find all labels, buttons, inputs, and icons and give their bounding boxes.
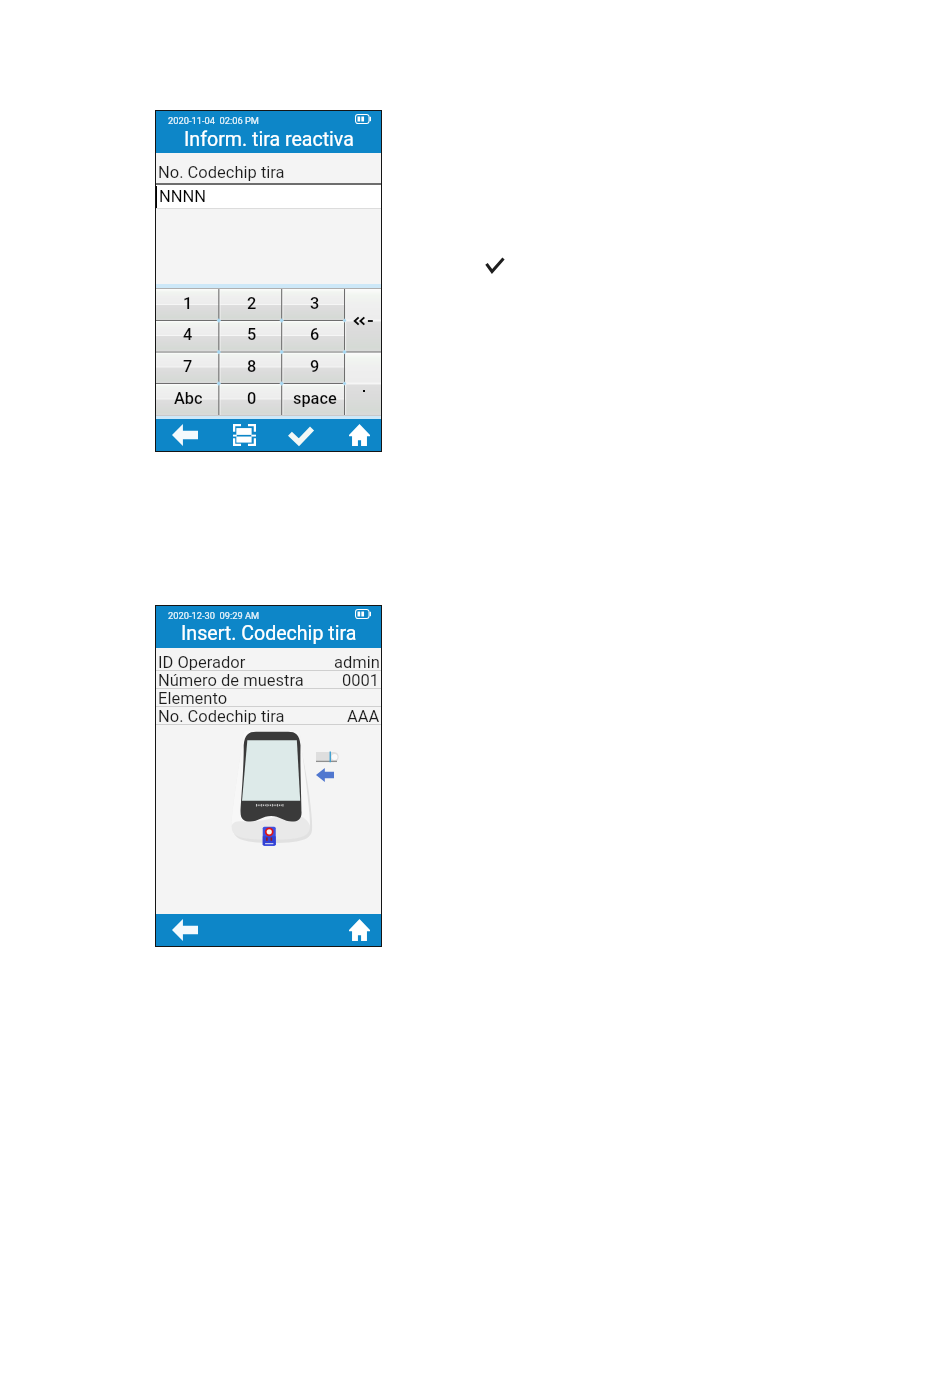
button[interactable]: 2 — [220, 289, 283, 320]
staticText: 2020-12-30 09:29 AM — [168, 610, 260, 621]
staticText: 7 — [183, 357, 193, 376]
button[interactable]: 8 — [220, 351, 283, 383]
staticText: NNNN — [159, 187, 207, 206]
staticText: Abc — [174, 389, 203, 408]
button[interactable]: 9 — [283, 351, 346, 383]
button[interactable] — [346, 289, 381, 352]
staticText: Elemento — [158, 689, 228, 707]
staticText: No. Codechip tira — [158, 163, 285, 182]
button[interactable]: space — [283, 383, 346, 415]
button[interactable]: Scan — [223, 419, 265, 451]
button[interactable]: Home — [338, 914, 380, 946]
staticText: No. Codechip tira — [158, 707, 285, 725]
button[interactable]: 7 — [156, 351, 220, 383]
staticText: 9 — [310, 357, 320, 376]
staticText: 2020-11-04 02:06 PM — [168, 115, 259, 126]
staticText: AAA — [347, 707, 380, 725]
button[interactable]: 3 — [283, 289, 346, 320]
staticText: 6 — [310, 325, 320, 344]
staticText: 0 — [247, 389, 257, 408]
staticText: 2 — [247, 294, 257, 313]
staticText: 0001 — [342, 671, 380, 689]
button[interactable]: 5 — [220, 320, 283, 351]
button[interactable]: Back — [164, 419, 206, 451]
button[interactable]: 4 — [156, 320, 220, 351]
staticText: 8 — [247, 357, 257, 376]
staticText: space — [293, 389, 337, 408]
staticText: 1 — [183, 294, 193, 313]
button[interactable] — [346, 352, 381, 415]
staticText: ID Operador — [158, 653, 246, 671]
button[interactable]: 1 — [156, 289, 220, 320]
staticText: 4 — [183, 325, 193, 344]
button[interactable]: Confirm — [280, 419, 322, 451]
button[interactable]: Home — [338, 419, 380, 451]
staticText: Insert. Codechip tira — [181, 622, 357, 645]
button[interactable]: 6 — [283, 320, 346, 351]
button[interactable]: Back — [164, 914, 206, 946]
staticText: 3 — [310, 294, 320, 313]
staticText: Número de muestra — [158, 671, 304, 689]
button[interactable]: Abc — [156, 383, 220, 415]
staticText: 5 — [247, 325, 257, 344]
button[interactable]: 0 — [220, 383, 283, 415]
staticText: admin — [334, 653, 380, 671]
staticText: Inform. tira reactiva — [184, 128, 354, 151]
